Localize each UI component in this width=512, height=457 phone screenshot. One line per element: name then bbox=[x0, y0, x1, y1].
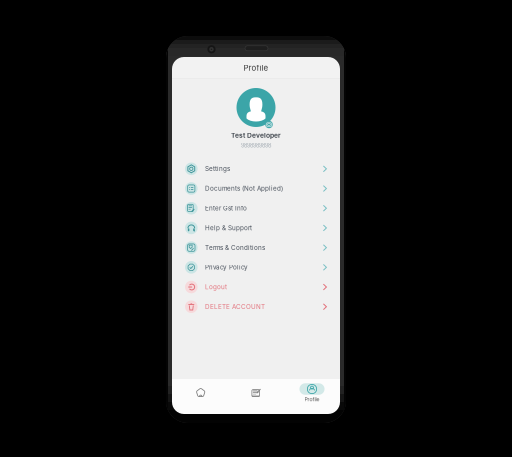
staticText: Settings bbox=[205, 165, 230, 173]
button[interactable]: Terms & Conditions bbox=[172, 238, 340, 257]
button[interactable]: Enter Gst Info bbox=[172, 198, 340, 218]
staticText: Logout bbox=[205, 283, 227, 291]
staticText: Privacy Policy bbox=[205, 263, 248, 271]
button[interactable]: Home bbox=[172, 379, 228, 414]
button[interactable]: Orders bbox=[228, 379, 284, 414]
button[interactable]: Settings bbox=[172, 159, 340, 179]
button[interactable]: Profile bbox=[284, 379, 340, 414]
staticText: Enter Gst Info bbox=[205, 204, 247, 212]
staticText: Test Developer bbox=[231, 131, 281, 139]
staticText: Documents (Not Applied) bbox=[205, 185, 283, 192]
staticText: Profile bbox=[304, 396, 319, 402]
button[interactable]: DELETE ACCOUNT bbox=[172, 297, 340, 317]
button[interactable]: Help & Support bbox=[172, 218, 340, 238]
staticText: Terms & Conditions bbox=[205, 244, 265, 251]
button[interactable]: Privacy Policy bbox=[172, 257, 340, 277]
staticText: Profile bbox=[243, 63, 268, 73]
button[interactable]: Logout bbox=[172, 277, 340, 297]
staticText: 9898989898 bbox=[241, 142, 271, 149]
staticText: Help & Support bbox=[205, 224, 252, 232]
staticText: DELETE ACCOUNT bbox=[205, 303, 265, 310]
button[interactable]: Documents (Not Applied) bbox=[172, 179, 340, 198]
